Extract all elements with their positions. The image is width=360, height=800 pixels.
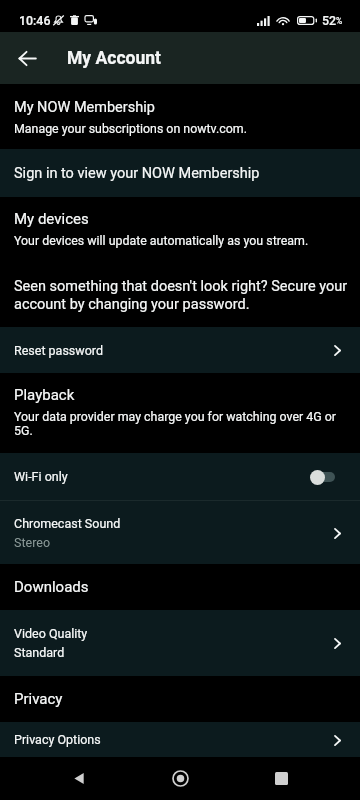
button[interactable]: Reset password bbox=[0, 327, 360, 373]
staticText: Privacy bbox=[14, 690, 63, 708]
other: Video Quality bbox=[326, 632, 348, 654]
button[interactable]: My NOW Membership bbox=[0, 84, 360, 149]
staticText: Manage your subscriptions on nowtv.com. bbox=[14, 121, 247, 136]
button[interactable]: Sign in to view your NOW Membership bbox=[0, 149, 360, 197]
button[interactable]: Home bbox=[158, 757, 202, 800]
staticText: My Account bbox=[67, 48, 161, 69]
button[interactable]: Video Quality bbox=[0, 610, 360, 676]
button[interactable]: Recent apps bbox=[259, 757, 303, 800]
staticText: Playback bbox=[14, 386, 75, 404]
staticText: Chromecast Sound bbox=[14, 516, 121, 531]
button[interactable]: Privacy Options bbox=[0, 722, 360, 757]
staticText: Video Quality bbox=[14, 626, 88, 641]
staticText: Wi-Fi only bbox=[14, 469, 68, 484]
staticText: My NOW Membership bbox=[14, 99, 155, 116]
other: Chromecast Sound bbox=[326, 522, 348, 544]
staticText: Sign in to view your NOW Membership bbox=[14, 165, 260, 182]
staticText: Your devices will update automatically a… bbox=[14, 233, 309, 248]
staticText: Stereo bbox=[14, 535, 51, 550]
staticText: Privacy Options bbox=[14, 732, 101, 747]
button[interactable]: Navigate up bbox=[11, 42, 43, 74]
other: Reset password bbox=[326, 339, 348, 361]
staticText: My devices bbox=[14, 210, 89, 228]
staticText: % bbox=[336, 16, 343, 26]
button[interactable]: Wi-Fi only bbox=[0, 453, 360, 500]
button[interactable]: Chromecast Sound bbox=[0, 501, 360, 564]
other: Wi-Fi only toggle bbox=[310, 469, 335, 485]
staticText: Your data provider may charge you for wa… bbox=[14, 409, 348, 439]
button[interactable]: Back bbox=[57, 757, 101, 800]
other: Privacy Options bbox=[326, 729, 348, 751]
staticText: Seen something that doesn't look right? … bbox=[14, 278, 348, 312]
staticText: 10:46 bbox=[19, 13, 51, 28]
staticText: 52 bbox=[322, 13, 337, 28]
staticText: Standard bbox=[14, 645, 65, 660]
staticText: Reset password bbox=[14, 343, 104, 358]
staticText: Downloads bbox=[14, 578, 89, 596]
